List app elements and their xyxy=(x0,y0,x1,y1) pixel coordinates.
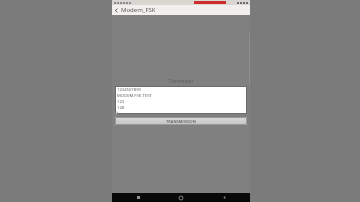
staticText: TRANSMISSION xyxy=(166,119,196,124)
button[interactable]: 1234567890 xyxy=(115,86,247,114)
staticText: 128 xyxy=(117,105,125,111)
button[interactable]: TRANSMISSION xyxy=(115,117,247,125)
button[interactable]: Recent apps xyxy=(121,193,155,202)
staticText: Transmitter xyxy=(115,78,247,84)
staticText: 1234567890 xyxy=(117,87,141,93)
button[interactable]: Navigate up xyxy=(112,5,121,15)
staticText: MODEM FSK TEST xyxy=(117,93,152,99)
staticText: 123 xyxy=(117,99,125,105)
staticText: Modem_FSK xyxy=(121,6,156,14)
button[interactable]: Back xyxy=(207,193,241,202)
button[interactable]: Home xyxy=(164,193,198,202)
